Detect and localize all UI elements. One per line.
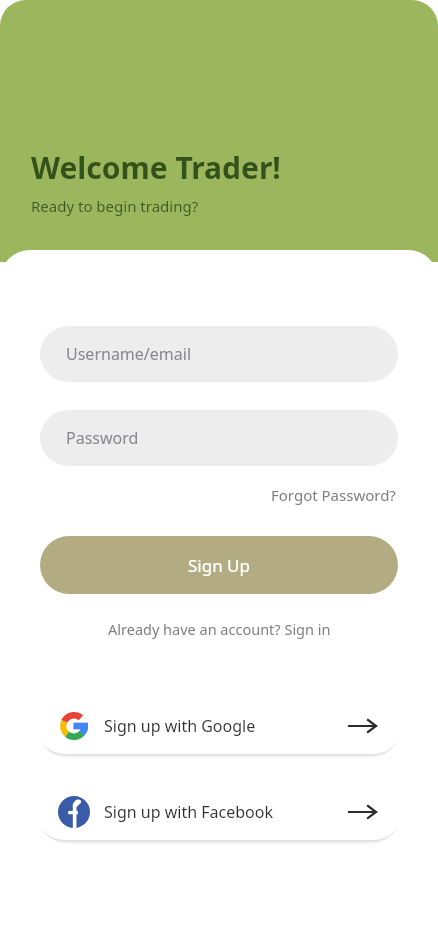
button[interactable]: Facebook — [36, 784, 402, 840]
button[interactable]: Sign Up — [40, 536, 398, 594]
other: Google — [60, 712, 88, 740]
staticText: Forgot Password? — [271, 485, 396, 505]
staticText: Sign up with Facebook — [104, 801, 273, 823]
button[interactable]: Forgot Password? — [269, 482, 398, 508]
other: Continue — [348, 802, 378, 822]
staticText: Username/email — [66, 343, 192, 365]
other: Facebook — [58, 796, 90, 828]
other: Continue — [348, 716, 378, 736]
button[interactable]: Password — [40, 410, 398, 466]
button[interactable]: Username/email — [40, 326, 398, 382]
staticText: Welcome Trader! — [31, 147, 281, 188]
staticText: Password — [66, 427, 139, 449]
button[interactable]: Google — [36, 698, 402, 754]
staticText: Sign up with Google — [104, 715, 256, 737]
staticText: Sign Up — [188, 554, 250, 577]
staticText: Already have an account? Sign in — [108, 619, 331, 639]
button[interactable]: Already have an account? Sign in — [104, 616, 335, 642]
staticText: Ready to begin trading? — [31, 196, 199, 216]
